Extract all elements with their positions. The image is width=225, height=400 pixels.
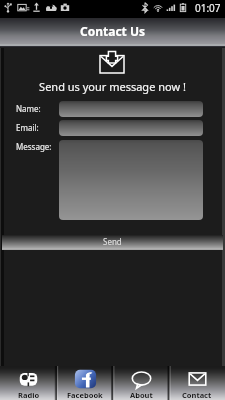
button[interactable] bbox=[59, 140, 203, 220]
button[interactable]: Facebook bbox=[57, 366, 113, 400]
staticText: Send us your message now ! bbox=[0, 79, 225, 94]
staticText: Message: bbox=[16, 141, 52, 152]
staticText: About bbox=[130, 390, 153, 400]
staticText: Contact Us bbox=[80, 23, 146, 39]
staticText: Facebook bbox=[67, 390, 103, 400]
staticText: Name: bbox=[16, 103, 41, 114]
button[interactable]: About bbox=[113, 366, 169, 400]
staticText: Email: bbox=[16, 122, 39, 133]
button[interactable] bbox=[59, 101, 203, 117]
staticText: 01:07 bbox=[195, 1, 221, 15]
button[interactable] bbox=[59, 120, 203, 136]
button[interactable]: Send bbox=[2, 235, 223, 250]
button[interactable]: Radio bbox=[0, 366, 57, 400]
staticText: Contact bbox=[182, 390, 212, 400]
staticText: Send bbox=[103, 236, 122, 247]
staticText: Radio bbox=[18, 390, 40, 400]
button[interactable]: Contact bbox=[169, 366, 225, 400]
